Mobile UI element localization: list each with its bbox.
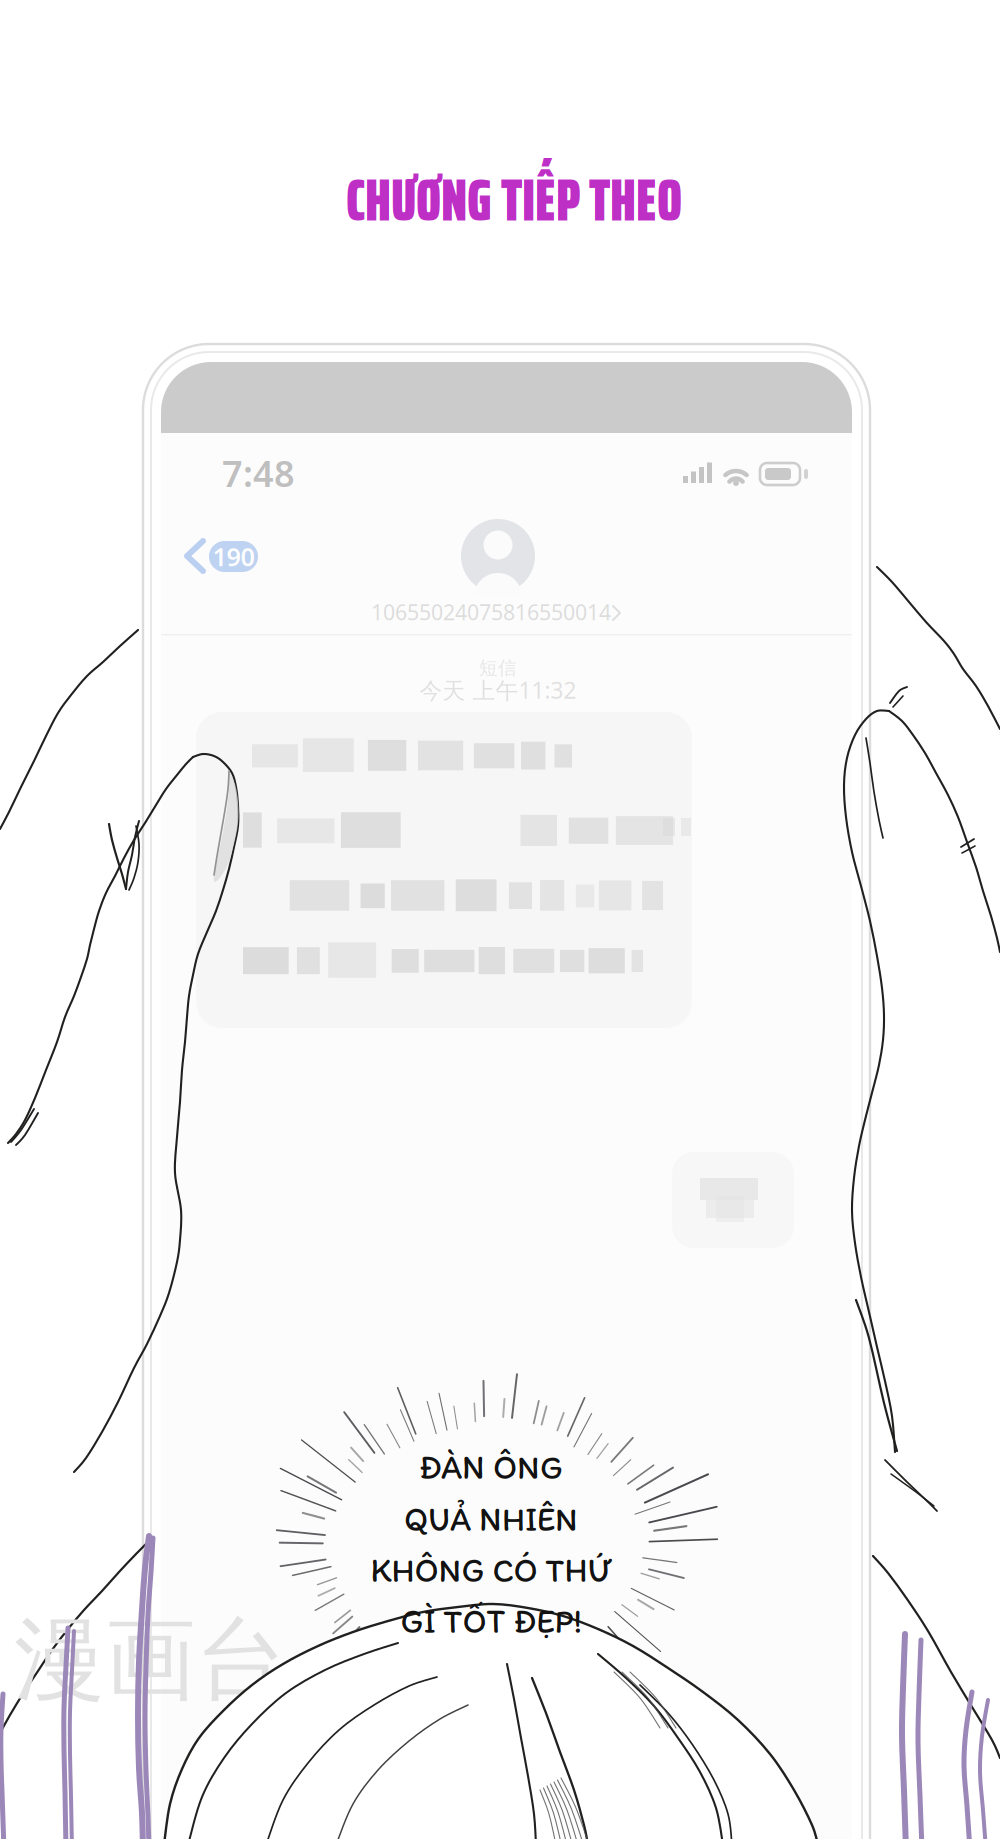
staticText: CHƯƠNG TIẾP THEO xyxy=(346,154,682,246)
staticText: 短信 xyxy=(479,656,517,679)
staticText: 10655024075816550014 xyxy=(371,598,611,626)
button[interactable]: Contact 10655024075816550014 xyxy=(0,0,1000,1839)
staticText: ĐÀN ÔNG xyxy=(419,1447,563,1487)
button[interactable]: 190 xyxy=(0,0,1000,1839)
staticText: GÌ TỐT ĐẸP! xyxy=(400,1601,581,1641)
staticText: KHÔNG CÓ THỨ xyxy=(370,1550,611,1590)
staticText: 今天 上午11:32 xyxy=(419,675,576,705)
staticText: 漫画台 xyxy=(14,1604,287,1716)
staticText: QUẢ NHIÊN xyxy=(404,1499,578,1539)
staticText: 190 xyxy=(212,540,254,573)
staticText: 7:48 xyxy=(222,449,295,497)
